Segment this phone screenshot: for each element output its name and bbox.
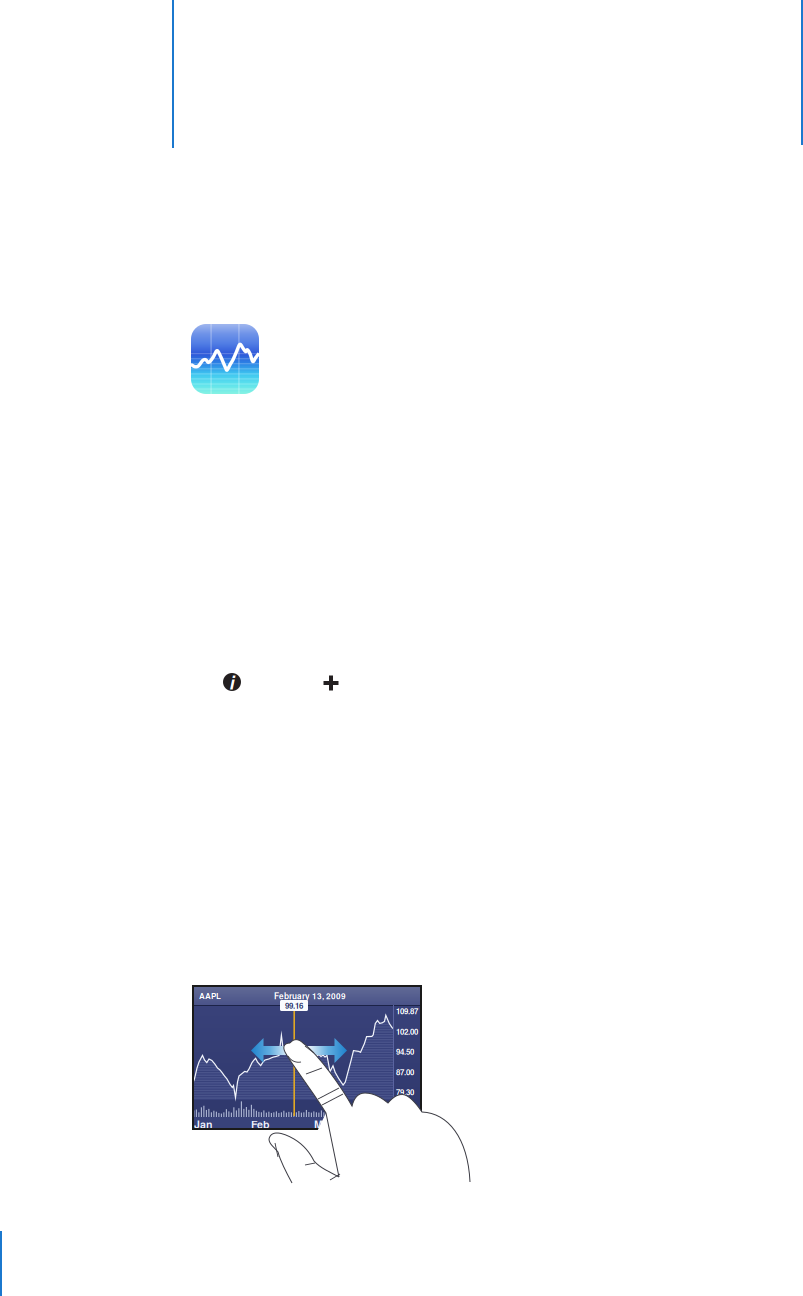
staticText: Mar [314,1116,333,1132]
staticText: i [229,669,234,695]
staticText: 102.00 [396,1026,418,1037]
staticText: 94.50 [396,1046,414,1057]
staticText: Jan [194,1116,213,1132]
staticText: 99.16 [285,1000,303,1011]
staticText: February 13, 2009 [274,990,346,1002]
staticText: 79.30 [396,1086,414,1098]
staticText: 109.87 [396,1005,418,1017]
staticText: 87.00 [396,1066,414,1078]
staticText: Feb [251,1116,270,1132]
staticText: AAPL [199,990,221,1001]
